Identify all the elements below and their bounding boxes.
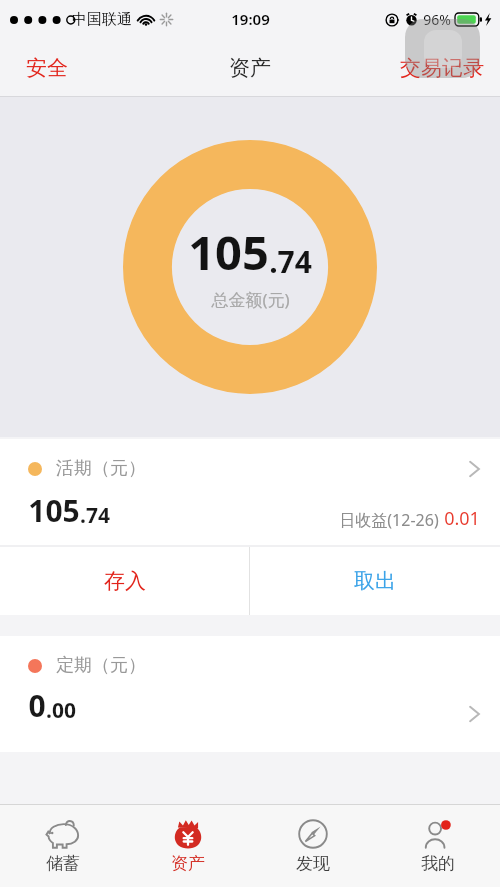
button[interactable]: 安全 <box>0 45 94 91</box>
staticText: 取出 <box>354 568 396 594</box>
staticText: .00 <box>46 696 76 725</box>
button[interactable]: 储蓄 <box>0 805 125 887</box>
staticText: 105 <box>188 220 269 284</box>
button[interactable]: 定期（元） <box>0 636 500 752</box>
staticText: 0.01 <box>444 506 480 531</box>
staticText: 安全 <box>26 55 68 81</box>
staticText: 资产 <box>171 853 205 874</box>
button[interactable]: 资产 <box>125 805 250 887</box>
staticText: 交易记录 <box>400 55 484 81</box>
staticText: 0 <box>28 685 46 726</box>
staticText: 活期（元） <box>56 457 146 480</box>
staticText: 96% <box>423 10 451 29</box>
staticText: 中国联通 <box>72 10 132 29</box>
staticText: .74 <box>269 241 312 282</box>
staticText: 存入 <box>104 568 146 594</box>
staticText: 我的 <box>421 853 455 874</box>
staticText: 定期（元） <box>56 654 146 677</box>
button[interactable]: 存入 <box>0 547 249 615</box>
button[interactable]: 活期（元） <box>0 439 500 545</box>
staticText: 发现 <box>296 853 330 874</box>
button[interactable]: 发现 <box>250 805 375 887</box>
staticText: 105 <box>28 490 80 531</box>
staticText: 储蓄 <box>46 853 80 874</box>
staticText: 19:09 <box>231 9 270 29</box>
staticText: .74 <box>80 501 110 530</box>
button[interactable]: 交易记录 <box>384 45 500 91</box>
staticText: 资产 <box>229 55 271 81</box>
button[interactable]: 取出 <box>250 547 500 615</box>
staticText: 总金额(元) <box>211 288 290 311</box>
button[interactable]: 我的 <box>375 805 500 887</box>
staticText: 日收益(12-26) <box>339 509 439 531</box>
